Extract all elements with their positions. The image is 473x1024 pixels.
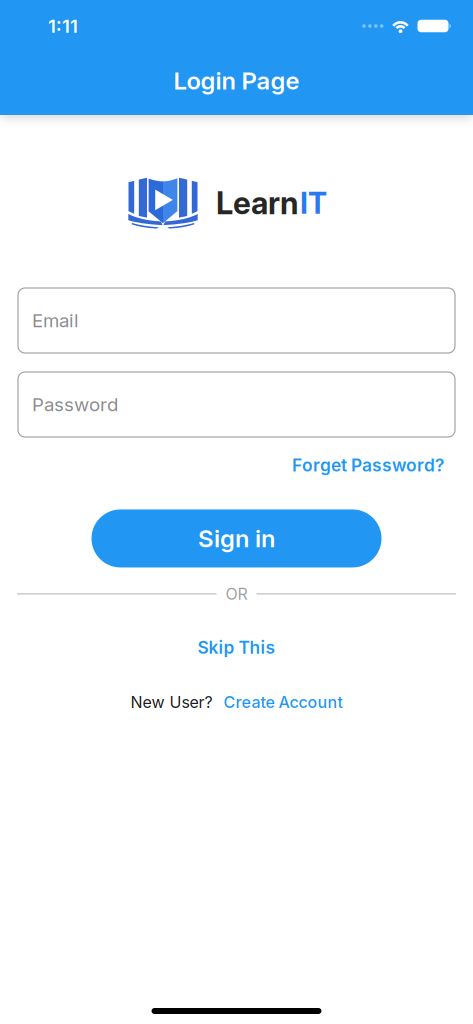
staticText: Login Page — [173, 67, 299, 95]
button[interactable]: Sign in — [91, 509, 381, 567]
staticText: Sign in — [198, 524, 275, 553]
staticText: Create Account — [223, 693, 342, 712]
button[interactable]: Email — [18, 288, 455, 353]
staticText: Password — [32, 393, 118, 415]
staticText: Skip This — [197, 637, 275, 658]
staticText: 1:11 — [48, 15, 78, 37]
button[interactable]: Forget Password? — [292, 455, 444, 475]
button[interactable]: Create Account — [223, 693, 342, 712]
staticText: OR — [225, 584, 247, 603]
button[interactable]: Password — [18, 372, 455, 437]
staticText: Learn — [216, 185, 299, 221]
button[interactable]: Skip This — [197, 637, 275, 658]
staticText: Forget Password? — [292, 455, 444, 475]
staticText: IT — [300, 186, 327, 220]
staticText: New User? — [130, 693, 212, 712]
staticText: Email — [32, 309, 79, 331]
